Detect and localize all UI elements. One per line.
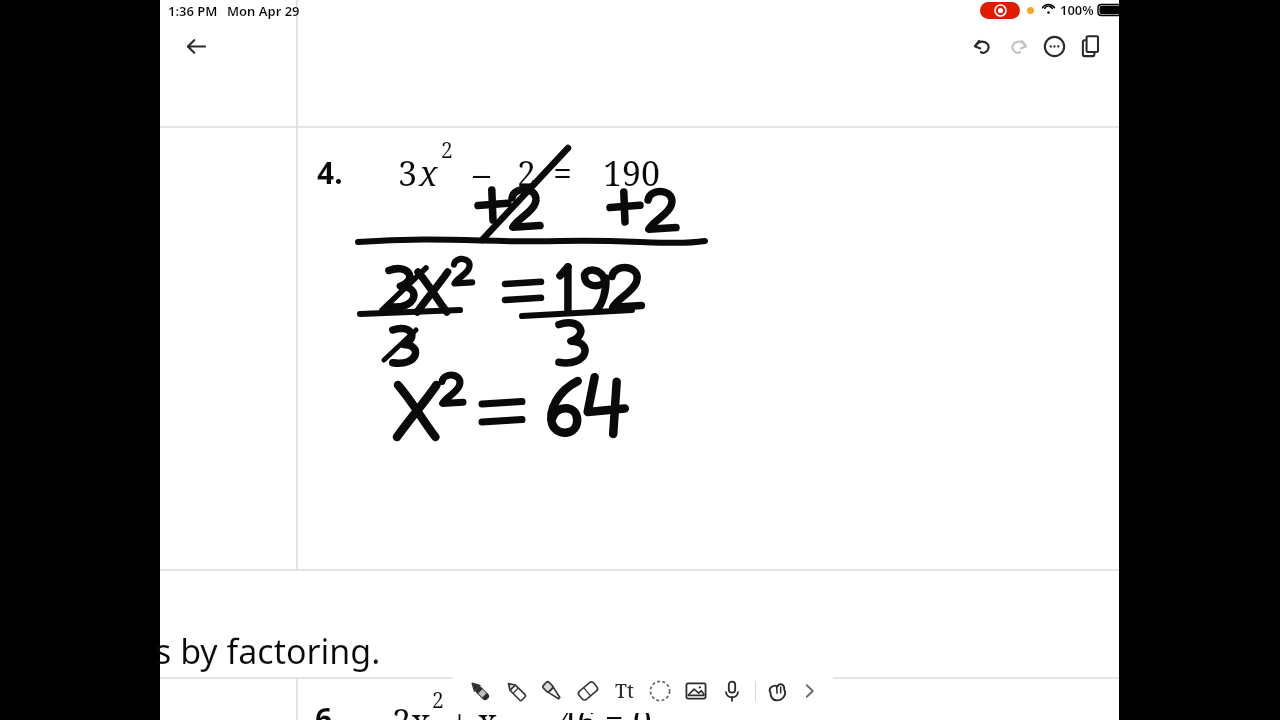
staticText: – <box>473 150 490 196</box>
button[interactable]: Insert image <box>678 673 714 709</box>
staticText: 2x <box>392 698 431 720</box>
staticText: = <box>553 150 573 196</box>
staticText: 4. <box>317 152 343 193</box>
staticText: 46 = 0 <box>558 698 652 720</box>
staticText: Tt <box>615 678 634 704</box>
staticText: 1:36 PM <box>168 2 218 20</box>
button[interactable]: Hand tool <box>760 673 796 709</box>
button[interactable]: Pencil <box>498 673 534 709</box>
staticText: 6. <box>315 698 341 720</box>
button[interactable]: Eraser <box>570 673 606 709</box>
staticText: 3 <box>398 150 418 196</box>
button[interactable]: Text <box>606 673 642 709</box>
staticText: Mon Apr 29 <box>227 2 300 20</box>
staticText: 190 <box>603 150 661 196</box>
staticText: 100% <box>1060 1 1094 19</box>
staticText: x <box>419 150 438 196</box>
staticText: + x <box>450 698 498 720</box>
button[interactable]: More options <box>1037 29 1071 63</box>
button[interactable]: Undo <box>965 29 999 63</box>
button[interactable]: Voice note <box>714 673 750 709</box>
button[interactable]: Redo <box>1001 29 1035 63</box>
staticText: 2 <box>517 150 537 196</box>
button[interactable]: More tools <box>796 677 824 705</box>
staticText: s by factoring. <box>155 628 381 674</box>
button[interactable]: Pages <box>1073 29 1107 63</box>
button[interactable]: Pen <box>462 673 498 709</box>
button[interactable]: Highlighter <box>534 673 570 709</box>
staticText: 2 <box>432 686 444 715</box>
staticText: 2 <box>441 136 453 165</box>
button[interactable]: Screen recording <box>980 2 1020 19</box>
button[interactable]: Lasso select <box>642 673 678 709</box>
button[interactable]: Back <box>177 27 215 65</box>
